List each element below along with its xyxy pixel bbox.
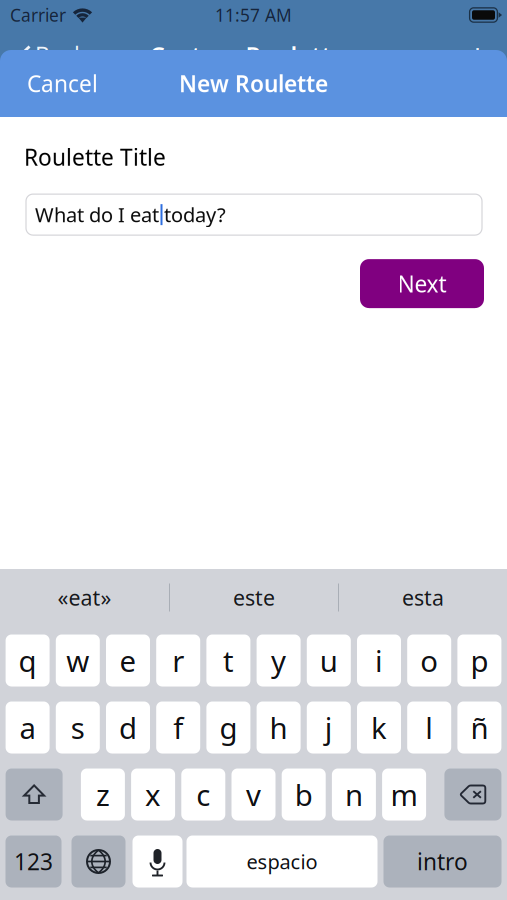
staticText: k (371, 708, 387, 747)
staticText: z (96, 775, 110, 814)
staticText: Cancel (27, 68, 98, 98)
staticText: h (270, 708, 288, 747)
staticText: esta (402, 583, 444, 612)
staticText: j (325, 708, 333, 747)
staticText: g (219, 708, 237, 747)
staticText: w (66, 641, 89, 680)
staticText: ñ (470, 708, 488, 747)
button[interactable]: Add roulette (464, 27, 491, 83)
staticText: Custom Roulettes (149, 39, 357, 71)
staticText: espacio (246, 848, 317, 875)
staticText: m (391, 775, 418, 814)
staticText: n (345, 775, 363, 814)
button[interactable]: x (131, 768, 175, 820)
button[interactable]: ñ (457, 701, 501, 753)
button[interactable]: l (407, 701, 451, 753)
button[interactable]: c (181, 768, 225, 820)
button[interactable]: a (6, 701, 50, 753)
button[interactable]: espacio (186, 835, 377, 887)
button[interactable]: n (332, 768, 376, 820)
staticText: u (320, 641, 338, 680)
button[interactable]: i (357, 634, 401, 686)
staticText: + (468, 33, 487, 77)
button[interactable]: Shift (6, 768, 63, 820)
button[interactable]: Next (360, 259, 484, 308)
staticText: b (295, 775, 313, 814)
button[interactable]: este (170, 569, 338, 625)
button[interactable]: b (282, 768, 326, 820)
button[interactable]: r (156, 634, 200, 686)
button[interactable]: t (206, 634, 250, 686)
staticText: i (375, 641, 383, 680)
staticText: este (233, 583, 275, 612)
button[interactable]: Cancel (0, 50, 116, 117)
staticText: Next (397, 269, 446, 299)
button[interactable]: m (382, 768, 426, 820)
staticText: Carrier (10, 3, 66, 26)
staticText: v (246, 775, 261, 814)
button[interactable]: h (257, 701, 301, 753)
staticText: What do I eat (35, 201, 159, 228)
staticText: a (20, 708, 36, 747)
button[interactable]: q (6, 634, 50, 686)
button[interactable]: u (307, 634, 351, 686)
button[interactable]: v (231, 768, 275, 820)
staticText: p (470, 641, 488, 680)
staticText: o (420, 641, 438, 680)
staticText: f (173, 708, 183, 747)
button[interactable]: Delete (444, 768, 501, 820)
staticText: Back (35, 40, 86, 70)
staticText: 123 (14, 846, 53, 876)
button[interactable]: d (106, 701, 150, 753)
staticText: r (172, 641, 184, 680)
staticText: x (145, 775, 161, 814)
staticText: 11:57 AM (215, 3, 292, 26)
button[interactable]: o (407, 634, 451, 686)
staticText: l (425, 708, 433, 747)
button[interactable]: intro (383, 835, 501, 887)
staticText: t (223, 641, 234, 680)
button[interactable]: s (56, 701, 100, 753)
staticText: «eat» (57, 583, 111, 612)
button[interactable]: 123 (5, 835, 61, 887)
button[interactable]: «eat» (0, 569, 169, 625)
staticText: e (119, 641, 136, 680)
button[interactable]: j (307, 701, 351, 753)
staticText: today? (164, 201, 226, 228)
button[interactable]: Next keyboard (71, 835, 125, 887)
button[interactable]: z (81, 768, 125, 820)
button[interactable]: k (357, 701, 401, 753)
button[interactable]: Dictation (132, 835, 182, 887)
staticText: New Roulette (179, 68, 328, 98)
button[interactable]: Back (19, 32, 86, 78)
button[interactable]: e (106, 634, 150, 686)
staticText: Roulette Title (24, 142, 166, 172)
button[interactable]: y (257, 634, 301, 686)
button[interactable]: w (56, 634, 100, 686)
staticText: d (119, 708, 137, 747)
staticText: y (271, 641, 286, 680)
staticText: c (196, 775, 210, 814)
button[interactable]: p (457, 634, 501, 686)
staticText: q (19, 641, 37, 680)
button[interactable]: f (156, 701, 200, 753)
button[interactable]: esta (339, 569, 507, 625)
staticText: s (71, 708, 85, 747)
button[interactable]: g (206, 701, 250, 753)
staticText: intro (417, 846, 468, 876)
